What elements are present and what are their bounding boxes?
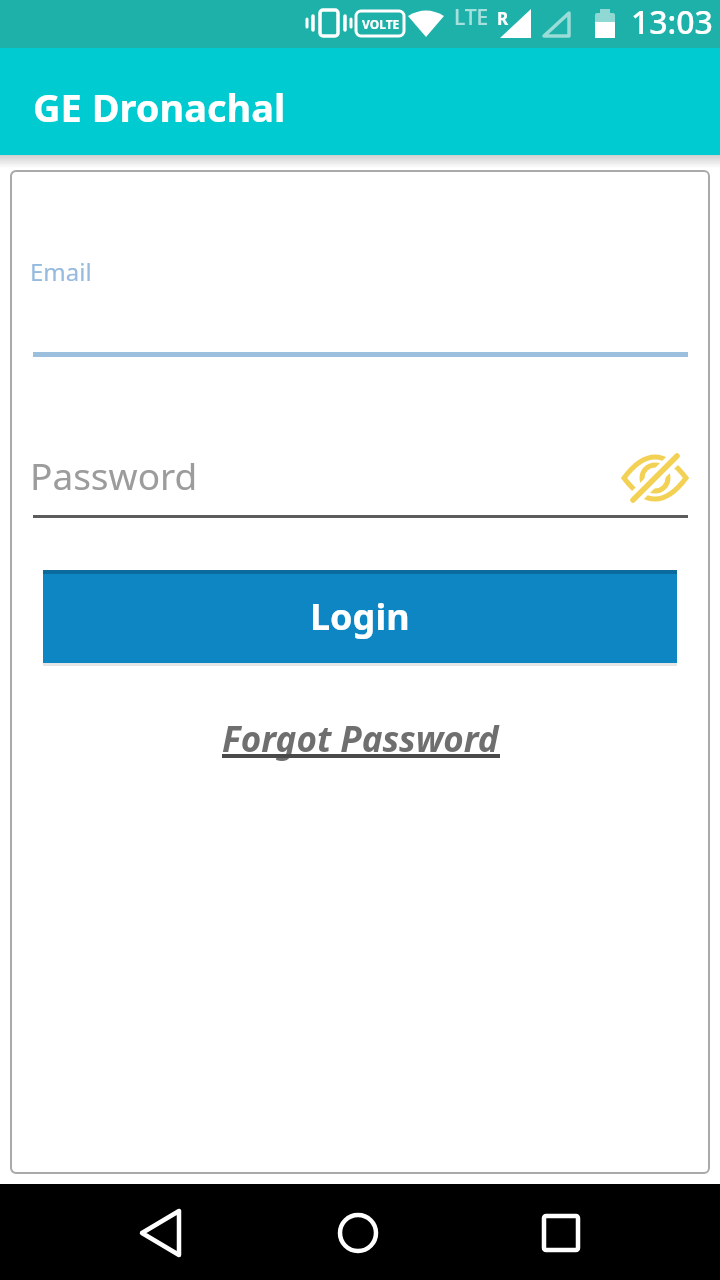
staticText: Email	[30, 255, 92, 288]
staticText: Login	[310, 592, 410, 641]
button[interactable]	[618, 444, 692, 512]
button[interactable]	[531, 1203, 591, 1263]
button[interactable]: Login	[43, 570, 677, 663]
button[interactable]: Forgot Password	[222, 715, 499, 763]
staticText: GE Dronachal	[33, 81, 286, 133]
button[interactable]	[328, 1203, 388, 1263]
staticText: LTE	[454, 3, 489, 32]
button[interactable]: Email	[30, 255, 688, 357]
staticText: Password	[30, 450, 198, 500]
button[interactable]: Password	[30, 450, 610, 518]
staticText: 13:03	[631, 0, 713, 44]
button[interactable]	[131, 1203, 191, 1263]
staticText: R	[497, 7, 509, 30]
staticText: VOLTE	[362, 16, 400, 32]
